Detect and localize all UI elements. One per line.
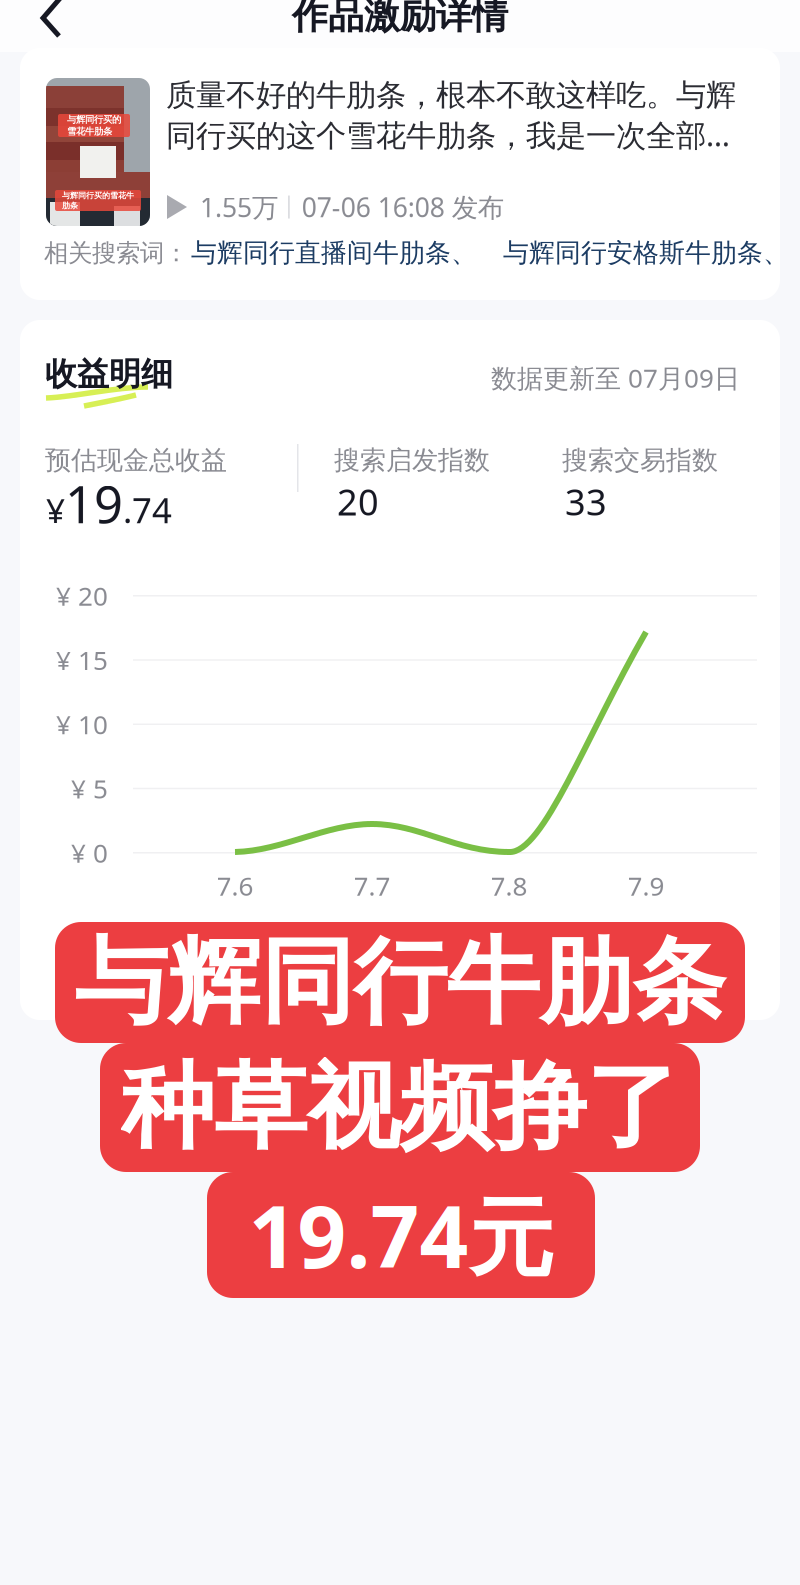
staticText: 相关搜索词：: [44, 238, 188, 268]
staticText: ¥ 10: [56, 706, 108, 742]
staticText: 数据更新至 07月09日: [491, 360, 740, 395]
staticText: 与辉同行买的 雪花牛肋条: [67, 114, 121, 137]
staticText: 07-06 16:08 发布: [302, 189, 504, 225]
staticText: 7.7: [353, 868, 390, 903]
staticText: ¥ 0: [71, 835, 108, 870]
staticText: 7.9: [627, 868, 664, 903]
staticText: 20: [337, 477, 379, 526]
staticText: 预估现金总收益: [45, 444, 227, 477]
staticText: 与辉同行安格斯牛肋条、: [503, 237, 789, 269]
staticText: ¥ 5: [71, 771, 108, 806]
button[interactable]: 与辉同行安格斯牛肋条、: [477, 237, 789, 269]
staticText: 与辉同行牛肋条: [74, 924, 725, 1041]
button[interactable]: 与辉同行直播间牛肋条、: [188, 237, 477, 269]
staticText: 搜索交易指数: [562, 444, 718, 477]
staticText: 19: [65, 469, 123, 538]
staticText: 7.8: [490, 868, 527, 903]
staticText: 种草视频挣了: [121, 1049, 679, 1166]
staticText: .74: [123, 486, 172, 533]
staticText: 33: [565, 477, 607, 526]
staticText: 7.6: [216, 868, 253, 903]
staticText: 与辉同行直播间牛肋条、: [191, 237, 477, 269]
staticText: 作品激励详情: [292, 0, 508, 39]
staticText: 搜索启发指数: [334, 444, 490, 477]
staticText: ¥: [46, 487, 65, 533]
button[interactable]: 返回: [0, 0, 72, 52]
staticText: 与辉同行买的雪花牛 肋条: [62, 190, 134, 211]
staticText: ¥ 15: [56, 642, 108, 678]
staticText: 19.74元: [248, 1177, 553, 1293]
staticText: 收益明细: [45, 354, 173, 394]
staticText: ¥ 20: [56, 578, 108, 613]
staticText: 质量不好的牛肋条，根本不敢这样吃。与辉同行买的这个雪花牛肋条，我是一次全部…: [166, 76, 736, 155]
staticText: 1.55万: [200, 189, 278, 225]
